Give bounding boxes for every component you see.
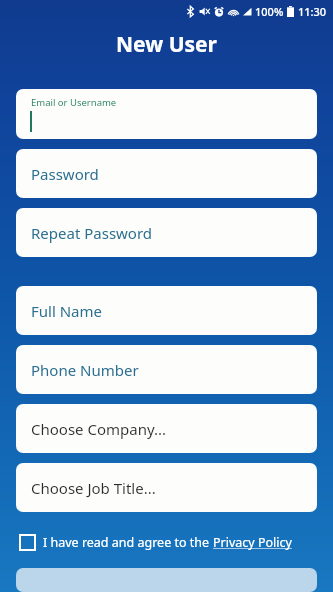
staticText: I have read and agree to the [43,534,213,551]
button[interactable]: Choose Job Title... [16,463,317,512]
staticText: New User [116,30,217,59]
staticText: 100% [255,4,284,19]
staticText: Password [31,164,99,184]
button[interactable]: Repeat Password [16,208,317,257]
staticText: Email or Username [31,96,117,109]
button[interactable]: Phone Number [16,345,317,394]
staticText: Repeat Password [31,223,153,243]
staticText: Phone Number [31,360,139,380]
staticText: Full Name [31,301,102,321]
button[interactable]: Sign Up [16,568,317,592]
button[interactable]: Choose Company... [16,404,317,453]
button[interactable]: Privacy Policy [213,534,292,551]
button[interactable]: Email or Username [16,89,317,139]
button[interactable]: Full Name [16,286,317,335]
button[interactable]: Password [16,149,317,198]
staticText: 11:30 [298,4,327,19]
staticText: Choose Company... [31,419,167,439]
button[interactable]: I have read and agree to the [20,529,313,555]
staticText: Choose Job Title... [31,478,156,498]
